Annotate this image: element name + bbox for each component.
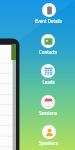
staticText: Leads <box>42 79 55 85</box>
button[interactable]: Speakers <box>26 125 70 146</box>
staticText: Contacts <box>39 49 57 55</box>
staticText: Speakers <box>39 140 58 146</box>
staticText: Event Details <box>35 18 62 24</box>
button[interactable]: Sessions <box>26 95 70 116</box>
staticText: Sessions <box>39 110 57 116</box>
button[interactable]: Leads <box>26 64 70 85</box>
button[interactable]: Contacts <box>26 34 70 55</box>
button[interactable]: Event Details <box>26 3 70 24</box>
